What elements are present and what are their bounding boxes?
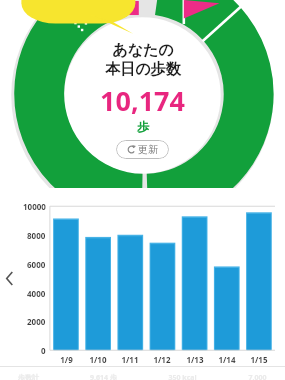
staticText: 1/14 xyxy=(218,354,236,365)
staticText: 10,174 xyxy=(100,82,185,119)
staticText: 0 xyxy=(41,345,46,356)
staticText: 1/12 xyxy=(153,354,171,365)
staticText: 10000 xyxy=(23,201,46,212)
staticText: 4000 xyxy=(27,288,46,299)
staticText: 1/10 xyxy=(89,354,107,365)
staticText: 8000 xyxy=(27,230,46,241)
staticText: 9,614 歩 xyxy=(90,373,117,380)
button[interactable]: Previous week xyxy=(0,263,18,293)
staticText: 歩 xyxy=(137,119,149,134)
staticText: 歩数計 xyxy=(18,373,39,380)
staticText: 1/9 xyxy=(60,354,73,365)
button[interactable]: 更新 xyxy=(116,140,169,159)
staticText: 本日の歩数 xyxy=(105,60,181,79)
staticText: 1/13 xyxy=(186,354,204,365)
staticText: 7,000 xyxy=(248,373,267,380)
staticText: 1/15 xyxy=(250,354,268,365)
staticText: 350 kcal xyxy=(168,373,197,380)
staticText: 1/11 xyxy=(121,354,139,365)
staticText: 6000 xyxy=(27,259,46,270)
staticText: 2000 xyxy=(27,316,46,327)
staticText: あなたの xyxy=(112,41,174,60)
staticText: 更新 xyxy=(138,143,158,156)
